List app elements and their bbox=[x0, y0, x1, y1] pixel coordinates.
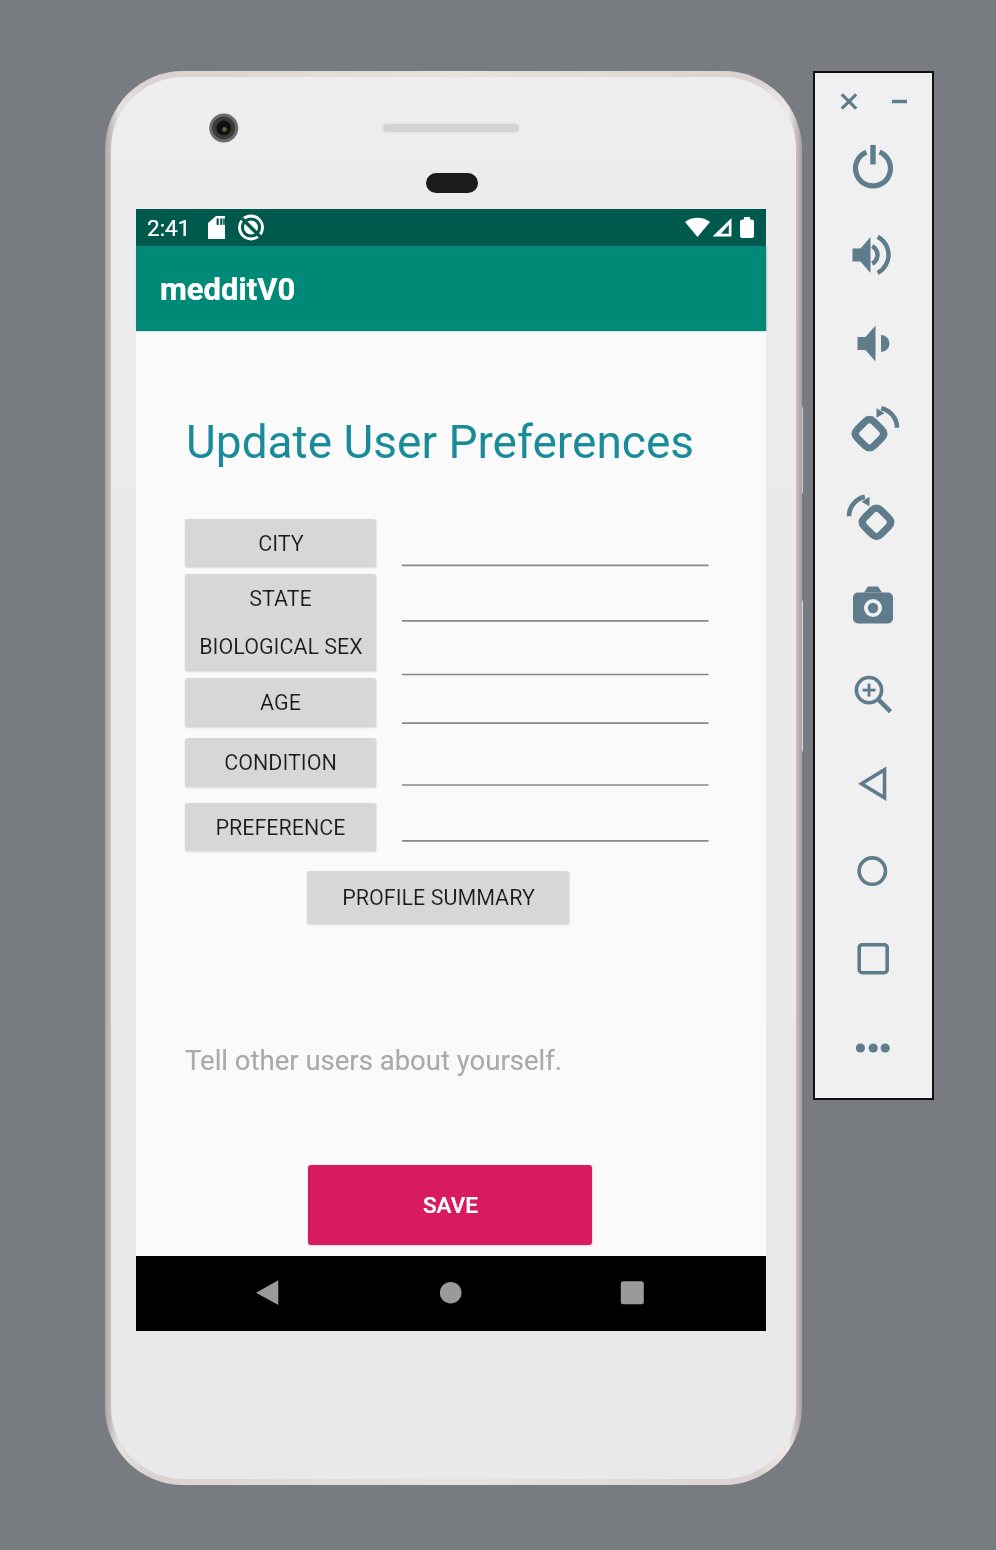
button[interactable]: More bbox=[843, 1020, 903, 1080]
button[interactable]: Back bbox=[843, 756, 903, 816]
staticText: CONDITION bbox=[224, 750, 337, 775]
button[interactable]: Recent apps bbox=[595, 1256, 670, 1331]
staticText: Update User Preferences bbox=[186, 415, 695, 469]
button[interactable]: Home bbox=[843, 843, 903, 903]
button[interactable]: PROFILE SUMMARY bbox=[307, 871, 569, 924]
staticText: medditV0 bbox=[160, 271, 296, 307]
button[interactable]: Power bbox=[843, 139, 903, 199]
button[interactable]: CONDITION bbox=[185, 738, 376, 787]
button[interactable]: Take screenshot bbox=[843, 578, 903, 638]
button[interactable]: Volume down bbox=[843, 315, 903, 375]
button[interactable]: STATE bbox=[185, 574, 376, 622]
staticText: AGE bbox=[260, 690, 301, 715]
button[interactable]: PREFERENCE bbox=[185, 803, 376, 851]
button[interactable]: CITY bbox=[185, 519, 376, 567]
staticText: BIOLOGICAL SEX bbox=[199, 634, 363, 659]
button[interactable]: AGE bbox=[185, 678, 376, 727]
staticText: CITY bbox=[258, 531, 304, 556]
button[interactable]: SAVE bbox=[308, 1165, 592, 1245]
staticText: 2:41 bbox=[147, 215, 191, 241]
button[interactable]: Volume up bbox=[843, 227, 903, 287]
button[interactable]: BIOLOGICAL SEX bbox=[185, 622, 376, 670]
button[interactable]: Minimize bbox=[885, 87, 913, 115]
button[interactable]: Overview bbox=[843, 931, 903, 991]
button[interactable]: Back bbox=[226, 1256, 301, 1331]
button[interactable]: Home bbox=[413, 1256, 488, 1331]
button[interactable]: Rotate left bbox=[843, 404, 903, 464]
staticText: STATE bbox=[249, 586, 312, 611]
staticText: Tell other users about yourself. bbox=[185, 1044, 562, 1076]
button[interactable]: Rotate right bbox=[843, 492, 903, 552]
staticText: SAVE bbox=[423, 1192, 478, 1218]
button[interactable]: Close bbox=[835, 87, 863, 115]
staticText: PREFERENCE bbox=[215, 815, 346, 840]
button[interactable]: medditV0 bbox=[136, 246, 766, 331]
button[interactable]: Zoom bbox=[843, 662, 903, 722]
staticText: PROFILE SUMMARY bbox=[342, 885, 535, 910]
